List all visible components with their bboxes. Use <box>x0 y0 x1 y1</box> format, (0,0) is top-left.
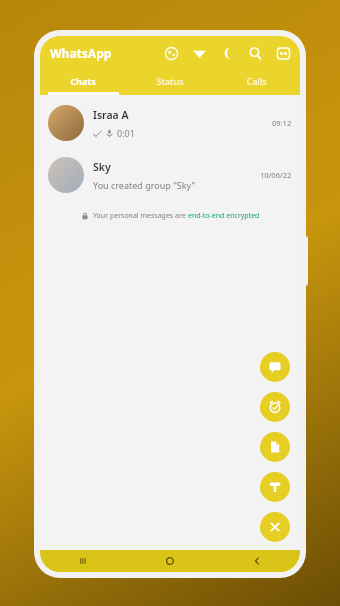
staticText: Calls <box>246 75 267 87</box>
button[interactable]: Do not disturb <box>218 44 236 62</box>
staticText: Your personal messages are <box>93 211 188 221</box>
button[interactable]: Back <box>213 550 300 572</box>
button[interactable]: Recents <box>40 550 126 572</box>
staticText: You created group "Sky" <box>93 179 196 191</box>
staticText: Chats <box>70 75 96 87</box>
button[interactable]: Status <box>126 75 213 87</box>
staticText: Status <box>156 75 184 87</box>
button[interactable]: Reminder <box>260 392 290 422</box>
button[interactable]: Status camera <box>162 44 180 62</box>
button[interactable]: Calls <box>213 75 300 87</box>
staticText: Sky <box>93 160 111 174</box>
staticText: Israa A <box>93 108 129 122</box>
button[interactable]: Israa A <box>40 97 300 149</box>
button[interactable]: WhatsApp <box>50 45 112 61</box>
button[interactable]: Search <box>246 44 264 62</box>
button[interactable]: More options <box>274 44 292 62</box>
button[interactable]: Network <box>190 44 208 62</box>
staticText: 09:12 <box>272 118 292 128</box>
button[interactable]: Tools <box>260 472 290 502</box>
button[interactable]: Sky <box>40 149 300 201</box>
button[interactable]: Chats <box>40 75 126 87</box>
button[interactable]: end-to-end encrypted <box>188 211 260 221</box>
button[interactable]: Close <box>260 512 290 542</box>
staticText: 10/06/22 <box>260 170 292 180</box>
button[interactable]: Home <box>126 550 213 572</box>
button[interactable]: Document <box>260 432 290 462</box>
staticText: 0:01 <box>117 127 135 139</box>
button[interactable]: New chat <box>260 352 290 382</box>
